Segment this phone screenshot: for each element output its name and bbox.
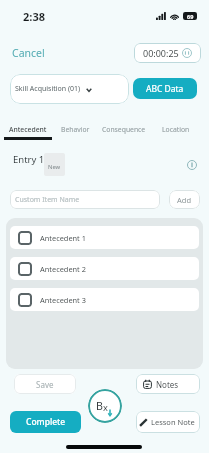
button[interactable]: Antecedent 1 bbox=[10, 226, 199, 249]
button[interactable]: Antecedent 3 bbox=[10, 288, 199, 311]
staticText: Notes bbox=[156, 379, 179, 390]
staticText: Consequence bbox=[102, 125, 146, 134]
button[interactable]: Behavior bbox=[55, 122, 95, 136]
button[interactable]: Behavior decrease bbox=[88, 389, 122, 423]
button[interactable]: ABC Data bbox=[133, 78, 197, 99]
button[interactable]: Location bbox=[157, 122, 195, 136]
button[interactable]: Information bbox=[183, 156, 200, 173]
staticText: New bbox=[48, 163, 61, 171]
button[interactable]: Add bbox=[169, 190, 200, 209]
staticText: Antecedent bbox=[9, 125, 47, 134]
button[interactable]: Antecedent bbox=[5, 122, 51, 136]
staticText: Entry 1 bbox=[13, 153, 45, 166]
staticText: 69 bbox=[187, 13, 194, 20]
staticText: Antecedent 2 bbox=[40, 264, 86, 274]
staticText: Save bbox=[36, 379, 54, 390]
button[interactable]: Lesson Note bbox=[136, 411, 200, 433]
staticText: Skill Acquisition (01) bbox=[15, 84, 81, 94]
button[interactable]: Complete bbox=[10, 411, 81, 433]
button[interactable]: Skill Acquisition (01) bbox=[10, 74, 129, 104]
other: Pause timer bbox=[182, 48, 192, 58]
staticText: Antecedent 1 bbox=[40, 233, 86, 243]
staticText: Behavior bbox=[61, 125, 90, 134]
button[interactable]: Cancel bbox=[9, 44, 48, 62]
button[interactable]: Antecedent 2 bbox=[10, 257, 199, 280]
staticText: 00:00:25 bbox=[143, 47, 179, 59]
staticText: Antecedent 3 bbox=[40, 295, 86, 305]
button[interactable]: Notes bbox=[136, 374, 200, 394]
staticText: Lesson Note bbox=[151, 417, 195, 427]
button[interactable]: Save bbox=[14, 374, 76, 394]
staticText: B bbox=[96, 399, 103, 414]
staticText: Complete bbox=[26, 416, 66, 428]
staticText: Cancel bbox=[12, 46, 45, 60]
button[interactable]: Custom Item Name bbox=[10, 190, 160, 209]
staticText: x bbox=[103, 401, 108, 414]
staticText: ABC Data bbox=[146, 83, 184, 95]
staticText: Custom Item Name bbox=[15, 195, 80, 205]
staticText: Location bbox=[162, 125, 190, 134]
button[interactable]: Consequence bbox=[99, 122, 149, 136]
button[interactable]: 00:00:25 bbox=[134, 43, 201, 63]
staticText: 2:38 bbox=[23, 9, 45, 24]
staticText: Add bbox=[177, 195, 192, 205]
